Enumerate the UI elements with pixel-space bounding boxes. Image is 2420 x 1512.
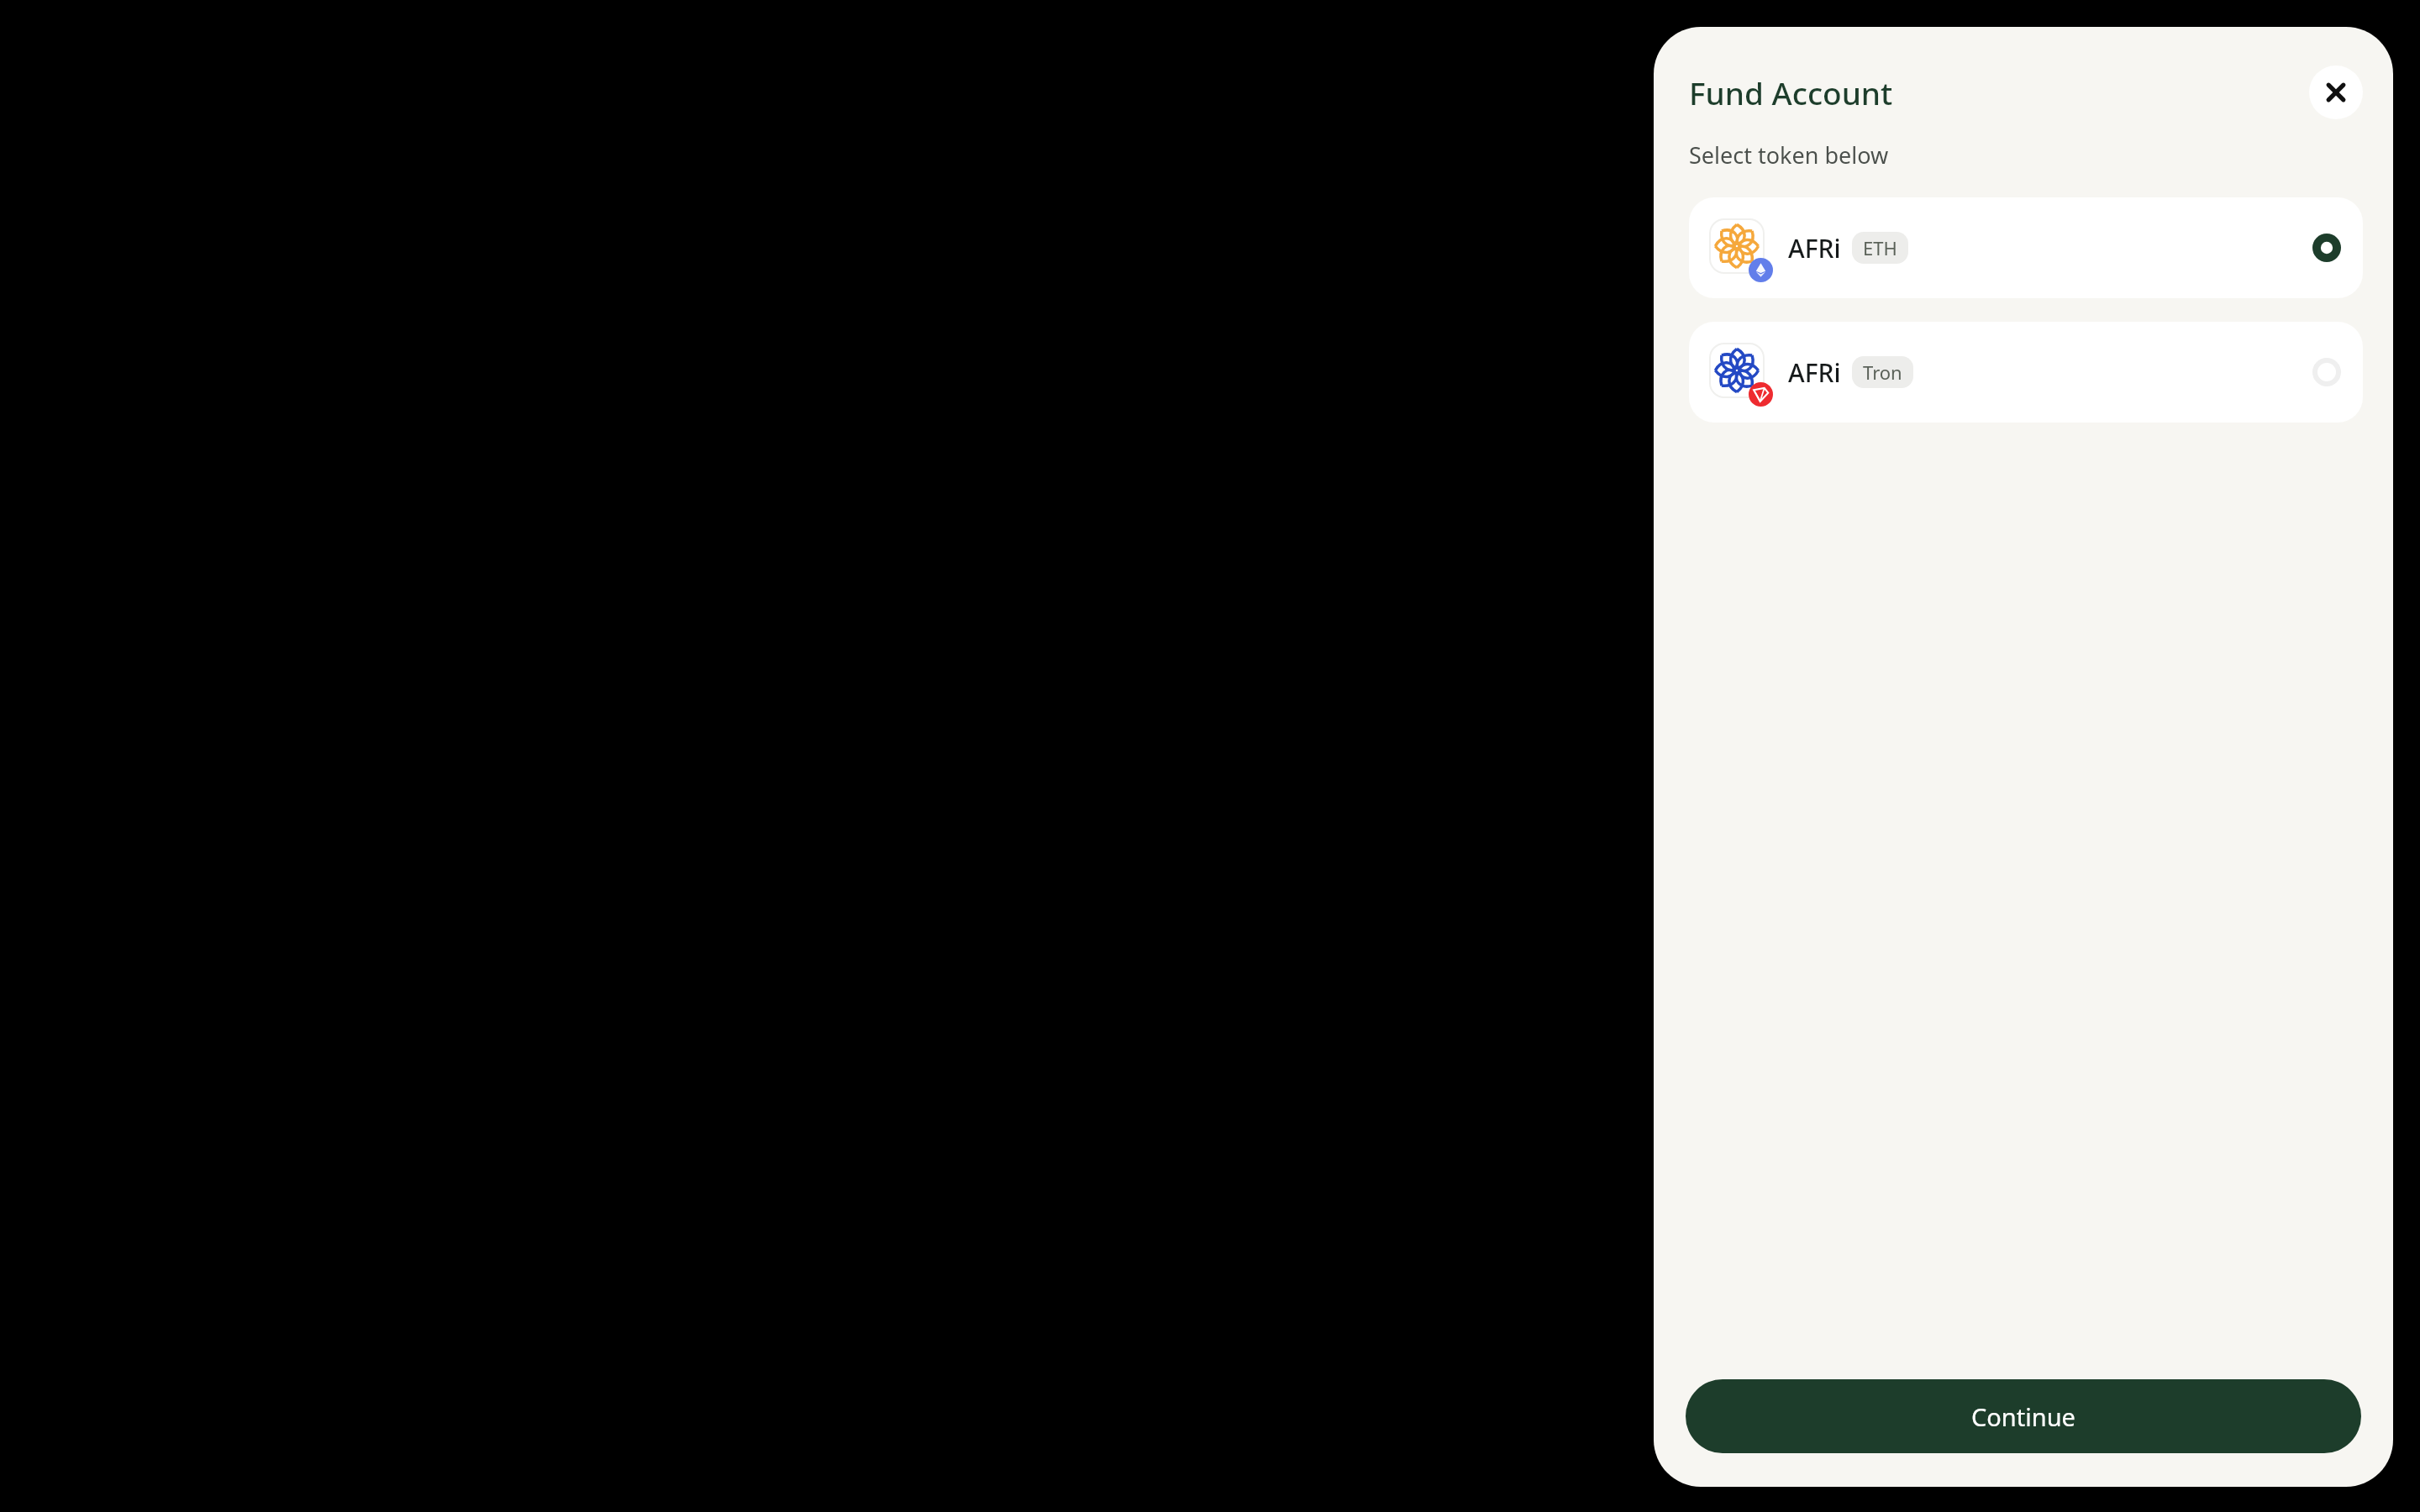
button[interactable]: Continue (1686, 1379, 2361, 1453)
button[interactable]: Close (2309, 66, 2363, 119)
staticText: Tron (1863, 360, 1902, 385)
staticText: AFRi (1788, 355, 1841, 390)
button[interactable]: AFRi (1689, 322, 2363, 423)
staticText: Continue (1971, 1400, 2075, 1433)
staticText: Fund Account (1689, 71, 1893, 113)
staticText: AFRi (1788, 231, 1841, 265)
button[interactable]: AFRi (1689, 197, 2363, 298)
staticText: Select token below (1689, 139, 1889, 171)
staticText: ETH (1863, 235, 1897, 260)
